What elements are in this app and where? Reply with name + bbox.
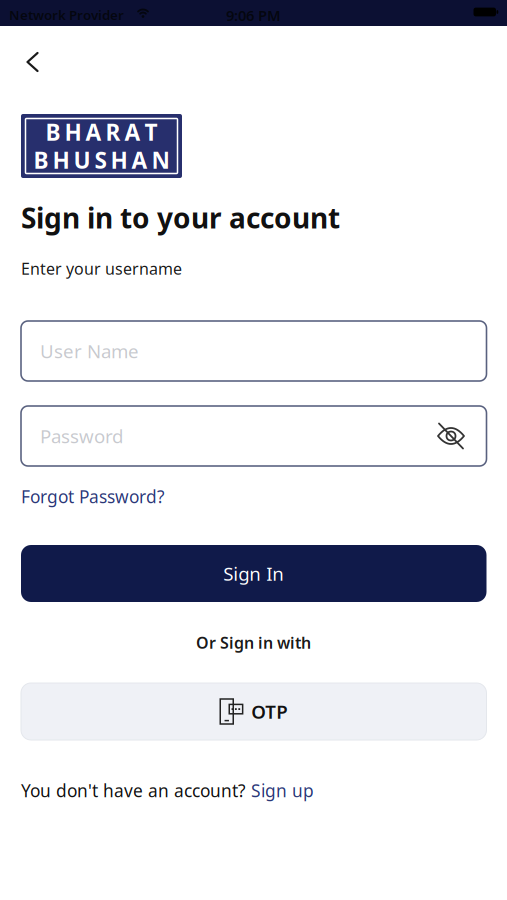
staticText: OTP <box>251 699 287 724</box>
staticText: User Name <box>40 339 139 363</box>
staticText: Sign up <box>251 779 314 802</box>
staticText: Or Sign in with <box>196 632 311 653</box>
staticText: 9:06 PM <box>226 5 281 25</box>
staticText: Sign in to your account <box>21 199 340 236</box>
staticText: You don't have an account? <box>21 779 246 802</box>
staticText: B H A R A T <box>45 117 157 147</box>
staticText: Password <box>40 424 123 448</box>
staticText: Network Provider <box>9 6 124 24</box>
staticText: Enter your username <box>21 258 182 279</box>
staticText: Forgot Password? <box>21 485 165 508</box>
staticText: Sign In <box>223 561 284 586</box>
staticText: B H U S H A N <box>33 145 169 175</box>
